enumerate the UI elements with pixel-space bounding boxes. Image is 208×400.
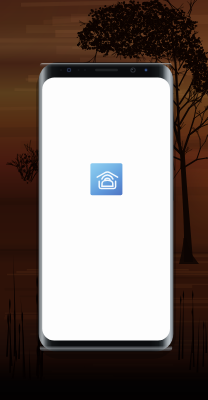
button[interactable]: Smart home app splash screen bbox=[0, 0, 208, 400]
